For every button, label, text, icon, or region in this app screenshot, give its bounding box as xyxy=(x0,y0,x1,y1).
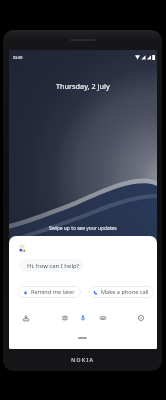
button[interactable]: Explore xyxy=(134,311,147,324)
button[interactable]: Hi, how can I help? xyxy=(19,259,84,272)
staticText: Thursday, 2 July xyxy=(56,81,110,91)
staticText: Make a phone call xyxy=(101,288,149,296)
button[interactable]: Google Lens xyxy=(58,311,71,324)
button[interactable]: Make a phone call xyxy=(88,286,154,298)
staticText: Remind me later xyxy=(31,288,75,296)
staticText: Swipe up to see your updates xyxy=(49,225,117,232)
staticText: Hi, how can I help? xyxy=(27,262,80,270)
button[interactable]: Remind me later xyxy=(18,286,81,298)
staticText: NOKIA xyxy=(71,356,94,363)
button[interactable]: Updates xyxy=(19,311,32,324)
button[interactable]: Keyboard xyxy=(96,311,109,324)
button[interactable]: Voice search xyxy=(76,311,89,324)
staticText: 03:00 xyxy=(13,55,23,60)
